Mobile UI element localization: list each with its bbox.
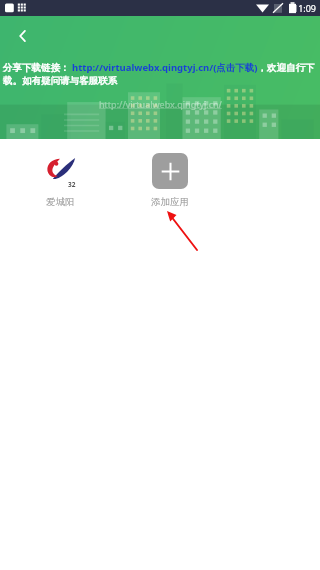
button[interactable]: 添加应用: [134, 139, 206, 208]
button[interactable]: 32: [24, 139, 96, 208]
staticText: 爱城阳: [46, 196, 75, 208]
staticText: 11:09: [293, 2, 317, 14]
staticText: 添加应用: [151, 196, 189, 208]
staticText: http://virtualwebx.qingtyj.cn/: [99, 98, 222, 110]
staticText: 分享下载链接： http://virtualwebx.qingtyj.cn/(点…: [3, 61, 318, 87]
staticText: 32: [68, 180, 76, 189]
button[interactable]: Back: [6, 19, 40, 53]
